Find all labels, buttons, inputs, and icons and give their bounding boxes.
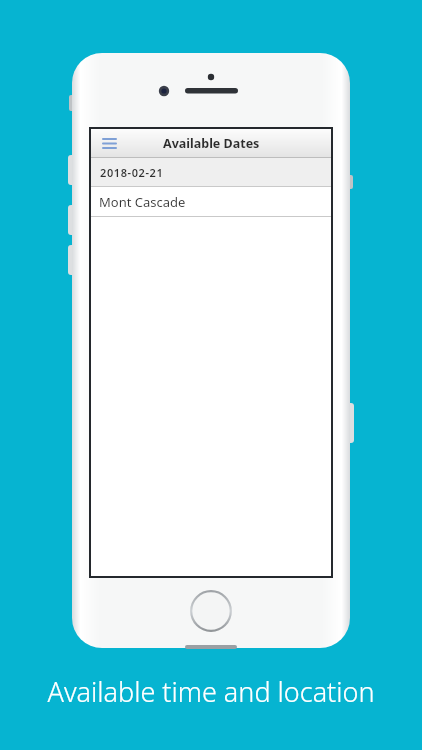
staticText: Available Dates xyxy=(163,135,260,152)
staticText: 2018-02-21 xyxy=(100,165,164,180)
button[interactable]: Mont Cascade xyxy=(91,187,331,216)
button[interactable]: Open navigation menu xyxy=(98,132,120,154)
staticText: Available time and location xyxy=(0,673,422,710)
staticText: Mont Cascade xyxy=(99,193,186,211)
